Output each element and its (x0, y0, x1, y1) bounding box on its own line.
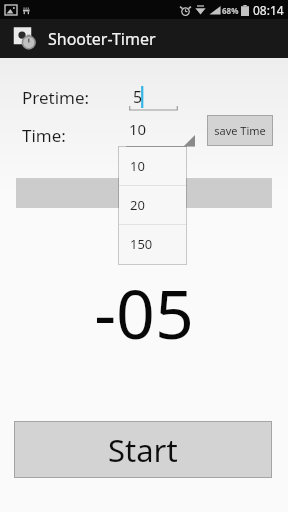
staticText: 68% (222, 5, 239, 16)
staticText: 08:14 (253, 2, 284, 18)
button[interactable]: Start (15, 422, 271, 477)
staticText: save Time (214, 123, 266, 138)
staticText: 10 (130, 157, 145, 175)
staticText: Start (108, 429, 178, 471)
staticText: 10 (129, 119, 147, 139)
staticText: 150 (130, 235, 153, 253)
button[interactable]: 5 (129, 85, 178, 112)
staticText: Pretime: (22, 86, 90, 109)
staticText: 5 (133, 86, 143, 108)
staticText: Time: (22, 124, 66, 147)
button[interactable]: save Time (208, 116, 272, 145)
button[interactable]: Time spinner (126, 119, 195, 147)
button[interactable]: 150 (119, 225, 186, 263)
staticText: -05 (94, 266, 194, 359)
button[interactable]: 20 (119, 186, 186, 224)
button[interactable]: 10 (119, 147, 186, 185)
staticText: Shooter-Timer (48, 28, 156, 50)
staticText: 20 (130, 196, 145, 214)
